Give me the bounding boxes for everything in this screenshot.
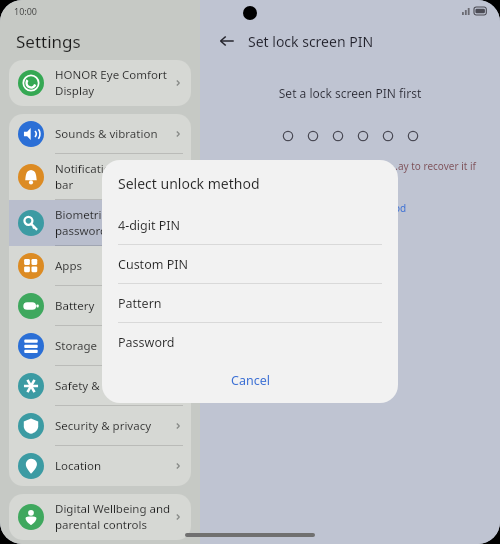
staticText: Custom PIN bbox=[118, 256, 188, 273]
staticText: HONOR Eye Comfort bbox=[55, 67, 167, 83]
button[interactable]: Notification & status bbox=[9, 154, 191, 200]
staticText: Set a lock screen PIN first bbox=[210, 85, 490, 101]
staticText: …ay to recover it if bbox=[390, 159, 500, 173]
button[interactable]: Safety & emergency bbox=[9, 366, 191, 406]
staticText: Safety & emergency bbox=[55, 378, 164, 394]
staticText: Display bbox=[55, 83, 95, 99]
button[interactable]: Cancel bbox=[102, 362, 398, 398]
button[interactable]: Apps bbox=[9, 246, 191, 286]
button[interactable]: Location bbox=[9, 446, 191, 486]
button[interactable]: Sounds & vibration bbox=[9, 114, 191, 154]
staticText: Set lock screen PIN bbox=[248, 32, 374, 51]
button[interactable]: HONOR Eye Comfort bbox=[9, 60, 191, 106]
staticText: Battery bbox=[55, 298, 95, 314]
staticText: Digital Wellbeing and bbox=[55, 501, 171, 517]
staticText: Pattern bbox=[118, 295, 162, 312]
staticText: Password bbox=[118, 334, 175, 351]
staticText: Notification & status bbox=[55, 161, 166, 177]
button[interactable]: Storage bbox=[9, 326, 191, 366]
staticText: Select unlock method bbox=[118, 174, 260, 193]
staticText: Settings bbox=[16, 30, 81, 53]
button[interactable]: Biometrics & bbox=[9, 200, 191, 246]
staticText: Storage bbox=[55, 338, 97, 354]
button[interactable]: 4-digit PIN bbox=[102, 206, 398, 245]
staticText: Sounds & vibration bbox=[55, 126, 158, 142]
staticText: 10:00 bbox=[14, 5, 38, 17]
button[interactable]: Battery bbox=[9, 286, 191, 326]
button[interactable]: Back bbox=[214, 28, 240, 54]
button[interactable]: Custom PIN bbox=[102, 245, 398, 284]
staticText: passwords bbox=[55, 223, 113, 239]
staticText: bar bbox=[55, 177, 74, 193]
staticText: Cancel bbox=[231, 372, 270, 389]
button[interactable]: Digital Wellbeing and bbox=[9, 494, 191, 540]
staticText: 4-digit PIN bbox=[118, 217, 181, 234]
button[interactable]: …od bbox=[386, 201, 500, 215]
staticText: parental controls bbox=[55, 517, 147, 533]
staticText: Biometrics & bbox=[55, 207, 124, 223]
staticText: Security & privacy bbox=[55, 418, 152, 434]
button[interactable]: Security & privacy bbox=[9, 406, 191, 446]
button[interactable]: Pattern bbox=[102, 284, 398, 323]
staticText: Apps bbox=[55, 258, 83, 274]
button[interactable]: Password bbox=[102, 323, 398, 362]
staticText: Location bbox=[55, 458, 102, 474]
